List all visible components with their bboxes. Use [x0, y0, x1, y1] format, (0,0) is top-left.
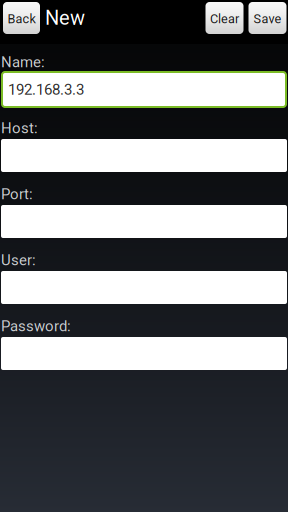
staticText: Password:	[1, 317, 71, 335]
staticText: New	[45, 6, 85, 30]
staticText: User:	[1, 251, 36, 269]
staticText: Port:	[1, 185, 33, 203]
staticText: Back	[7, 12, 35, 26]
button[interactable]: Clear	[205, 2, 243, 34]
button[interactable]: Back	[3, 2, 40, 34]
staticText: 192.168.3.3	[8, 81, 84, 98]
staticText: Name:	[1, 53, 45, 71]
staticText: Host:	[1, 119, 38, 137]
staticText: Clear	[210, 12, 239, 26]
button[interactable]: Save	[248, 2, 286, 34]
staticText: Save	[253, 12, 281, 26]
